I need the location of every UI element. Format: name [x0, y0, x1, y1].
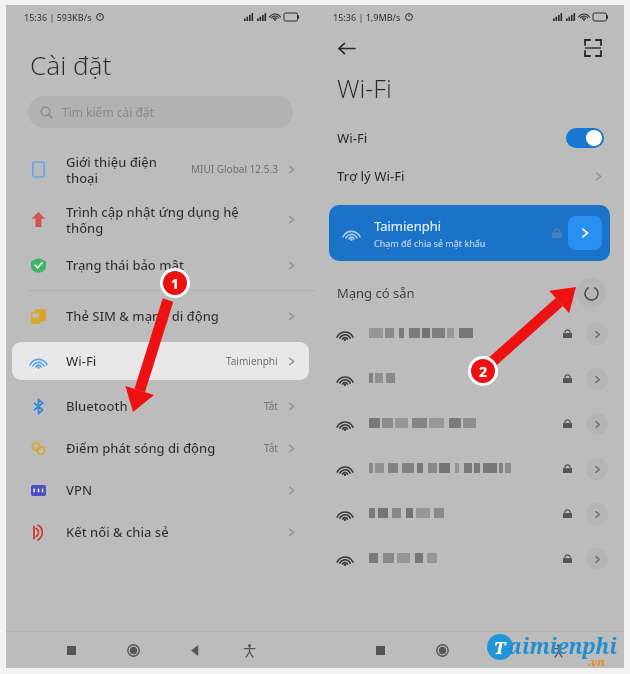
- button[interactable]: Kết nối & chia sẻ: [6, 511, 315, 553]
- button[interactable]: Tìm kiếm cài đặt: [28, 96, 293, 128]
- button[interactable]: Back: [490, 636, 518, 664]
- button[interactable]: [315, 491, 624, 536]
- button[interactable]: [315, 536, 624, 581]
- staticText: Mạng có sẵn: [337, 284, 576, 302]
- staticText: 15:36 | 1,9MB/s: [333, 11, 401, 23]
- staticText: Thẻ SIM & mạng di động: [66, 307, 286, 325]
- button[interactable]: [315, 401, 624, 446]
- staticText: Trợ lý Wi-Fi: [337, 167, 593, 185]
- button[interactable]: Wi-Fi: [315, 121, 624, 155]
- staticText: Taimienphi: [374, 217, 442, 235]
- staticText: Kết nối & chia sẻ: [66, 523, 286, 541]
- staticText: Tìm kiếm cài đặt: [62, 104, 154, 120]
- staticText: Tắt: [264, 441, 278, 455]
- staticText: Taimienphi: [226, 354, 278, 368]
- button[interactable]: Recents: [366, 636, 394, 664]
- staticText: 2: [479, 362, 488, 381]
- staticText: 15:36 | 593KB/s: [24, 11, 92, 23]
- button[interactable]: [315, 311, 624, 356]
- button[interactable]: Taimienphi: [329, 205, 610, 261]
- staticText: Wi-Fi: [337, 129, 566, 147]
- staticText: aimienphi: [508, 632, 617, 661]
- button[interactable]: Wi-Fi: [12, 342, 309, 380]
- button[interactable]: Recents: [57, 636, 85, 664]
- button[interactable]: Thẻ SIM & mạng di động: [6, 295, 315, 337]
- button[interactable]: Back: [333, 35, 359, 61]
- staticText: T: [494, 636, 506, 659]
- button[interactable]: [315, 356, 624, 401]
- staticText: Tắt: [264, 399, 278, 413]
- staticText: VPN: [66, 481, 286, 499]
- staticText: Chạm để chia sẻ mật khẩu: [374, 237, 486, 249]
- button[interactable]: Bluetooth: [6, 385, 315, 427]
- button[interactable]: Điểm phát sóng di động: [6, 427, 315, 469]
- button[interactable]: Trợ lý Wi-Fi: [315, 159, 624, 193]
- staticText: Giới thiệu điện thoại: [66, 153, 191, 186]
- staticText: 1: [171, 274, 180, 293]
- button[interactable]: Giới thiệu điện thoại: [6, 144, 315, 194]
- staticText: Wi-Fi: [337, 71, 392, 105]
- button[interactable]: Accessibility: [235, 636, 263, 664]
- button[interactable]: VPN: [6, 469, 315, 511]
- staticText: Bluetooth: [66, 397, 264, 415]
- button[interactable]: Trình cập nhật ứng dụng hệ thống: [6, 194, 315, 244]
- staticText: Trình cập nhật ứng dụng hệ thống: [66, 203, 286, 236]
- staticText: MIUI Global 12.5.3: [191, 162, 278, 176]
- button[interactable]: Scan QR code: [580, 35, 606, 61]
- button[interactable]: Home: [428, 636, 456, 664]
- button[interactable]: Accessibility: [544, 636, 572, 664]
- button[interactable]: Back: [181, 636, 209, 664]
- button[interactable]: Home: [119, 636, 147, 664]
- staticText: Điểm phát sóng di động: [66, 439, 264, 457]
- button[interactable]: Network details: [568, 216, 602, 250]
- button[interactable]: [315, 446, 624, 491]
- staticText: .vn: [588, 654, 605, 669]
- staticText: Trạng thái bảo mật: [66, 256, 286, 274]
- staticText: Cài đặt: [30, 47, 112, 82]
- button[interactable]: Refresh: [576, 278, 606, 308]
- button[interactable]: Trạng thái bảo mật: [6, 244, 315, 286]
- staticText: Wi-Fi: [66, 352, 226, 370]
